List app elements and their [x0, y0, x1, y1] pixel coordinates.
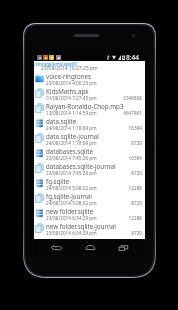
staticText: databases.sqlite — [46, 147, 94, 155]
button[interactable]: Back — [44, 239, 68, 256]
staticText: 16384 — [128, 155, 142, 161]
staticText: 23/08/2014 7:45:26 pm — [46, 170, 97, 176]
staticText: Raiyan-Ronaldo-Chop.mp3 — [46, 102, 124, 110]
staticText: 4647461 — [123, 110, 142, 116]
staticText: 24/08/2014 1:18:09 pm — [46, 125, 97, 131]
staticText: 2346808 — [123, 95, 142, 101]
staticText: 01/08/2014 7:27:45 pm — [46, 95, 97, 101]
staticText: 23/08/2014 7:45:26 pm — [46, 155, 97, 161]
staticText: 23/08/2014 4:00:25 pm — [46, 80, 97, 86]
staticText: 8:44 — [126, 53, 139, 61]
staticText: databases.sqlite-journal — [46, 162, 116, 170]
staticText: 13/08/2014 1:14:59 pm — [46, 110, 97, 116]
staticText: new folder.sqlite — [46, 207, 94, 215]
button[interactable]: Home — [78, 239, 102, 256]
staticText: /storage/emulated/0 — [34, 61, 77, 67]
staticText: 8720 — [131, 200, 142, 206]
button[interactable]: databases.sqlite — [34, 145, 145, 160]
button[interactable]: new folder.sqlite — [34, 205, 145, 220]
staticText: 24/08/2014 5:08:02 pm — [46, 185, 97, 191]
staticText: KidsMaths.apk — [46, 87, 89, 95]
button[interactable]: data.sqlite-journal — [34, 130, 145, 145]
staticText: 8720 — [131, 140, 142, 146]
button[interactable]: fg.sqlite-journal — [34, 190, 145, 205]
button[interactable]: fg.sqlite — [34, 175, 145, 190]
staticText: 8720 — [131, 170, 142, 176]
button[interactable]: new folder.sqlite-journal — [34, 220, 145, 235]
staticText: 8720 — [131, 230, 142, 236]
staticText: data.sqlite-journal — [46, 132, 99, 140]
button[interactable]: data.sqlite — [34, 115, 145, 130]
button[interactable]: Raiyan-Ronaldo-Chop.mp3 — [34, 100, 145, 115]
button[interactable]: databases.sqlite-journal — [34, 160, 145, 175]
staticText: 16384 — [128, 125, 142, 131]
staticText: 12288 — [128, 215, 142, 221]
staticText: fg.sqlite — [46, 177, 70, 185]
button[interactable]: Recent apps — [111, 239, 135, 256]
staticText: 24/08/2014 1:18:09 pm — [46, 140, 97, 146]
button[interactable]: voice-ringtones — [34, 70, 145, 85]
staticText: 23/08/2014 6:34:29 pm — [46, 230, 97, 236]
staticText: data.sqlite — [46, 117, 77, 125]
staticText: 24/08/2014 5:08:02 pm — [46, 200, 97, 206]
staticText: 23/08/2014 10:27:25 pm — [41, 65, 98, 72]
staticText: fg.sqlite-journal — [46, 192, 92, 200]
button[interactable]: KidsMaths.apk — [34, 85, 145, 100]
staticText: 23/08/2014 6:34:29 pm — [46, 215, 97, 221]
staticText: new folder.sqlite-journal — [46, 222, 116, 230]
staticText: 12288 — [128, 185, 142, 191]
staticText: voice-ringtones — [46, 72, 91, 80]
